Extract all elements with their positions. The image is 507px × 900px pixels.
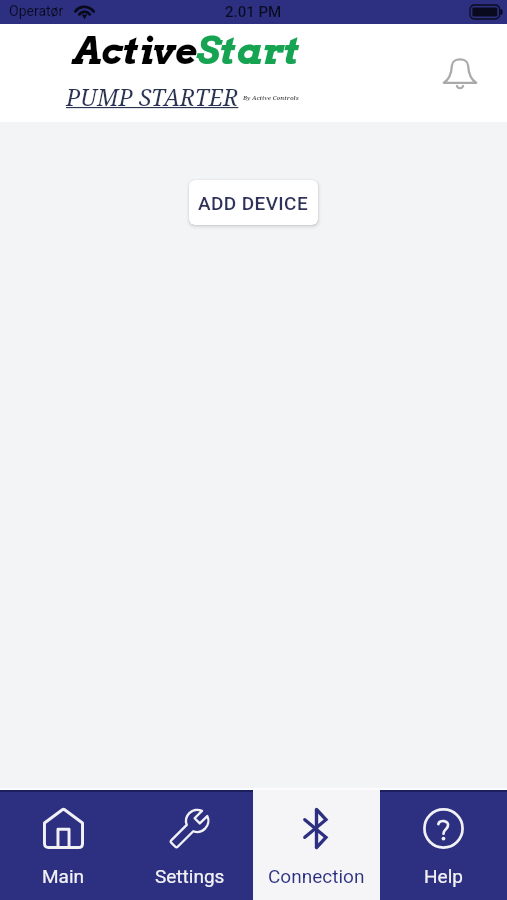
button[interactable]: Settings xyxy=(126,790,253,900)
staticText: Operatør xyxy=(9,3,64,19)
staticText: PUMP STARTER xyxy=(66,81,239,112)
staticText: Settings xyxy=(155,865,225,887)
staticText: Connection xyxy=(268,865,365,887)
staticText: Active xyxy=(73,27,196,73)
staticText: ADD DEVICE xyxy=(198,192,309,214)
button[interactable]: Connection xyxy=(253,790,380,900)
staticText: Help xyxy=(424,865,463,887)
staticText: 2.01 PM xyxy=(225,3,282,21)
button[interactable]: Help xyxy=(380,790,507,900)
button[interactable]: ADD DEVICE xyxy=(189,180,318,225)
staticText: Start xyxy=(196,27,300,73)
button[interactable]: Main xyxy=(0,790,126,900)
staticText: By Active Controls xyxy=(243,94,299,102)
button[interactable]: Notifications xyxy=(436,49,484,97)
staticText: Main xyxy=(42,865,85,887)
